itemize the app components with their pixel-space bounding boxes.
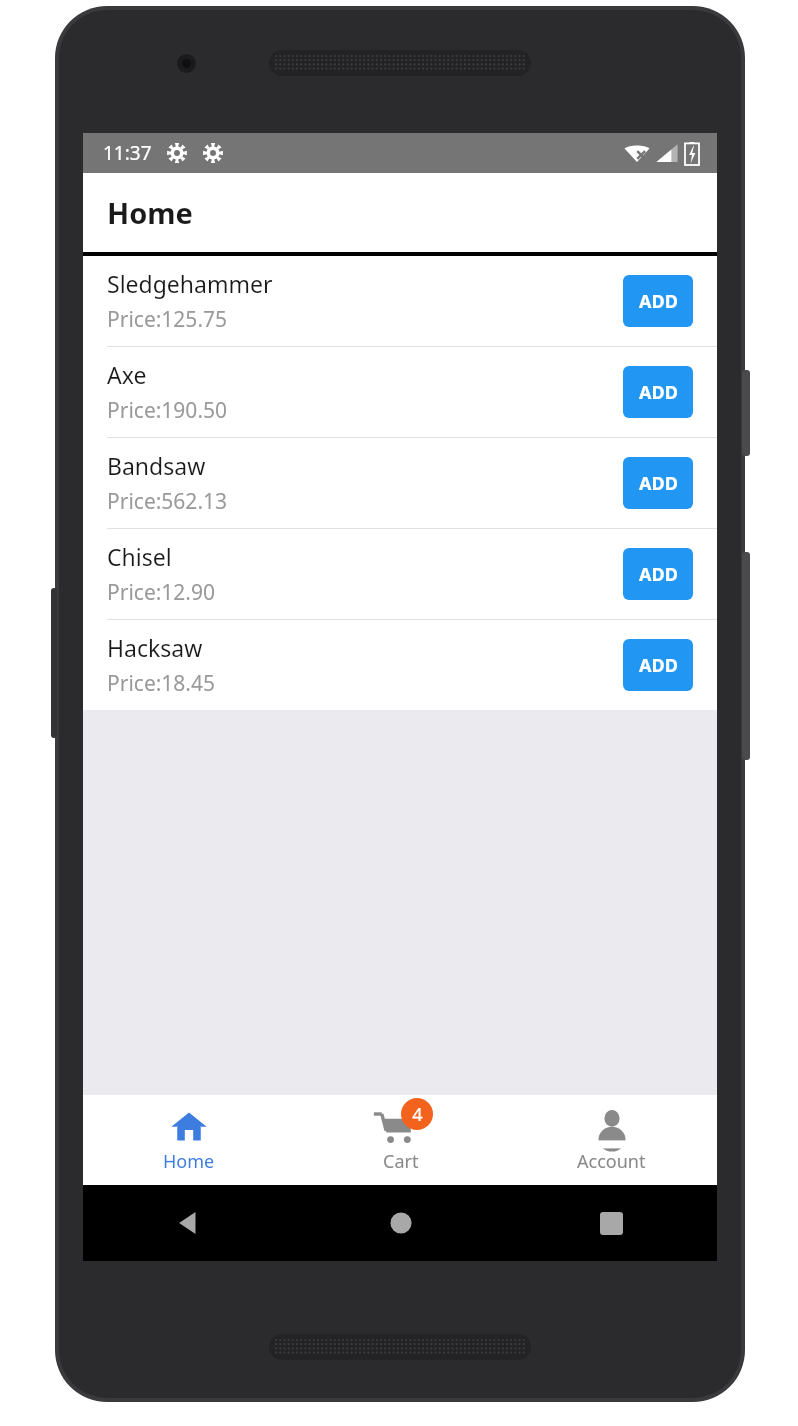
- button[interactable]: ADD: [623, 366, 693, 418]
- staticText: Price:18.45: [107, 669, 216, 698]
- other: Recent apps: [600, 1212, 623, 1235]
- staticText: Hacksaw: [107, 632, 203, 663]
- staticText: Cart: [383, 1149, 419, 1174]
- button[interactable]: ADD: [623, 275, 693, 327]
- other: Cart: [373, 1106, 417, 1146]
- staticText: Price:562.13: [107, 487, 228, 516]
- button[interactable]: ADD: [623, 457, 693, 509]
- staticText: Bandsaw: [107, 450, 206, 481]
- staticText: ADD: [639, 289, 678, 314]
- staticText: ADD: [639, 562, 678, 587]
- staticText: Chisel: [107, 541, 172, 572]
- staticText: Home: [107, 193, 193, 232]
- button[interactable]: Axe: [83, 347, 717, 437]
- button[interactable]: ADD: [623, 548, 693, 600]
- staticText: 4: [412, 1102, 423, 1127]
- other: Back: [176, 1210, 202, 1236]
- staticText: ADD: [639, 471, 678, 496]
- staticText: Axe: [107, 359, 147, 390]
- button[interactable]: Account: [506, 1095, 717, 1185]
- staticText: ADD: [639, 653, 678, 678]
- button[interactable]: ADD: [623, 639, 693, 691]
- staticText: Home: [163, 1149, 215, 1174]
- button[interactable]: Cart: [295, 1095, 506, 1185]
- staticText: Price:12.90: [107, 578, 216, 607]
- staticText: Sledgehammer: [107, 268, 273, 299]
- button[interactable]: Bandsaw: [83, 438, 717, 528]
- button[interactable]: Chisel: [83, 529, 717, 619]
- staticText: 11:37: [103, 140, 152, 166]
- staticText: Account: [577, 1149, 646, 1174]
- staticText: ADD: [639, 380, 678, 405]
- button[interactable]: Hacksaw: [83, 620, 717, 710]
- button[interactable]: Home: [83, 1095, 295, 1185]
- staticText: Price:125.75: [107, 305, 228, 334]
- button[interactable]: Sledgehammer: [83, 256, 717, 346]
- other: Home: [389, 1211, 413, 1235]
- staticText: Price:190.50: [107, 396, 228, 425]
